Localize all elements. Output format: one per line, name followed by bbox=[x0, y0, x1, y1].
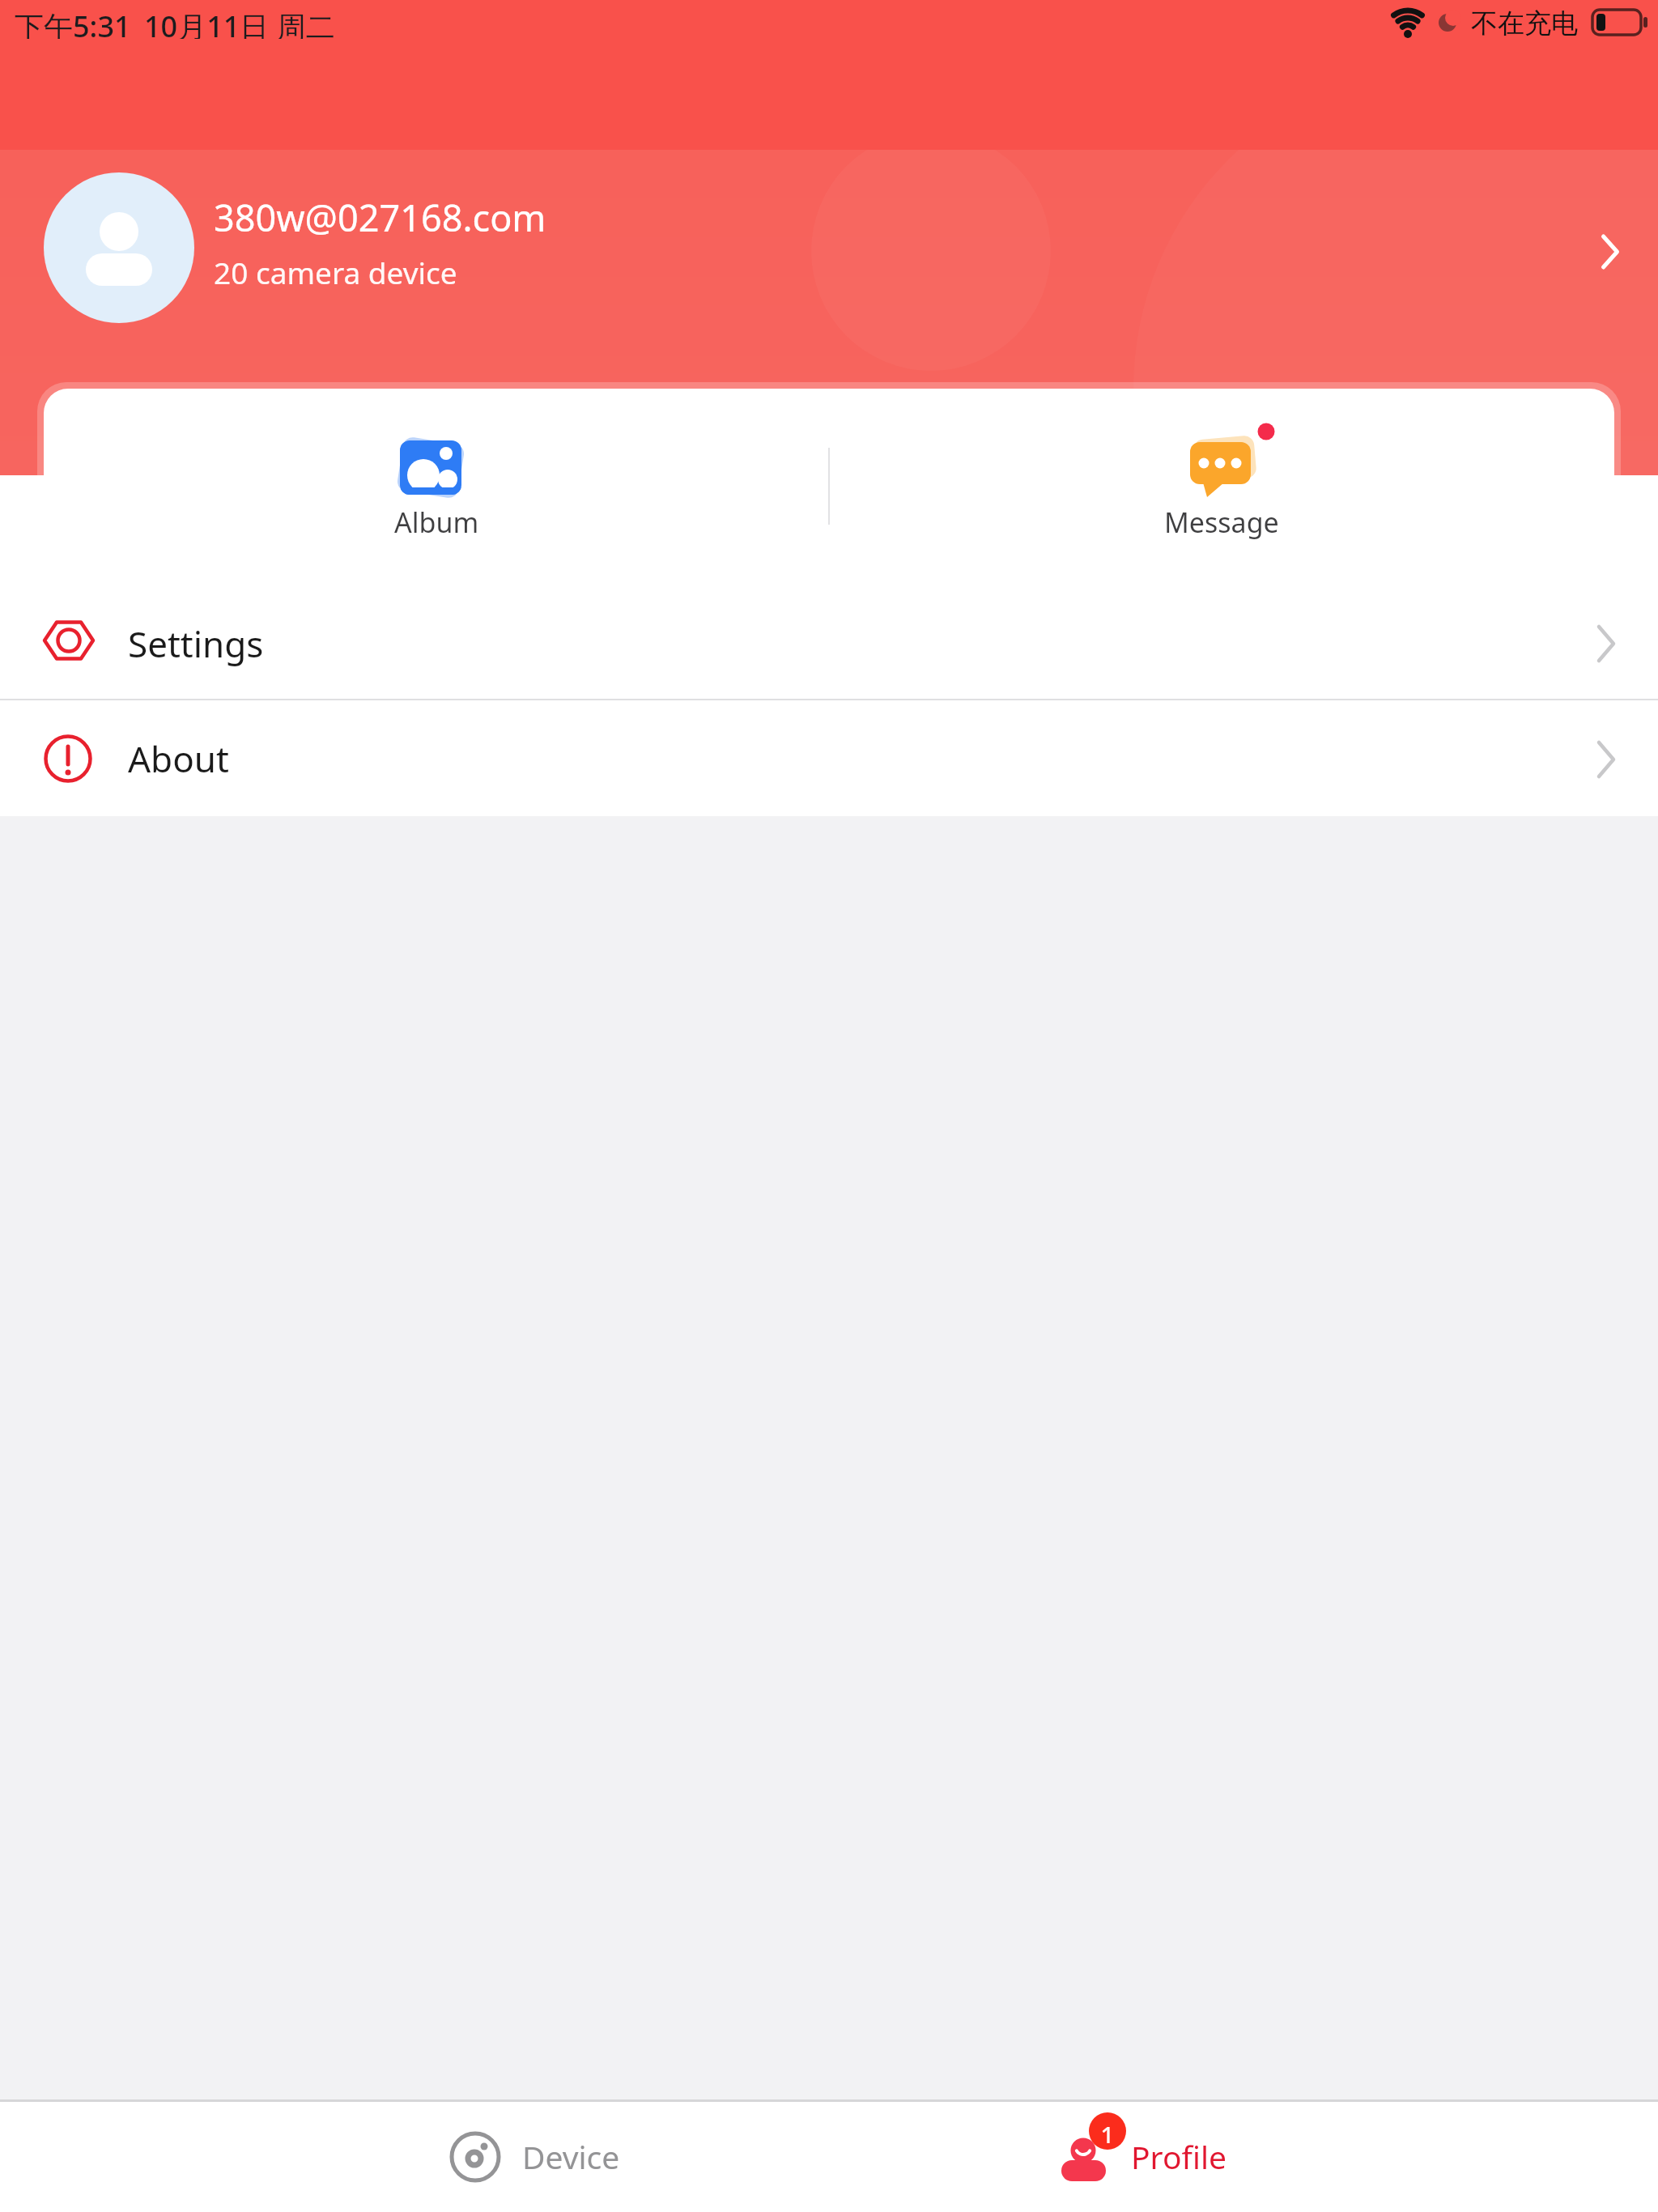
staticText: 下午5:31 bbox=[15, 6, 131, 39]
button[interactable]: Album bbox=[44, 389, 829, 561]
staticText: About bbox=[128, 734, 229, 783]
staticText: Settings bbox=[128, 619, 264, 668]
button[interactable]: About bbox=[0, 700, 1658, 816]
staticText: Album bbox=[394, 504, 479, 541]
staticText: 1 bbox=[1100, 2119, 1116, 2143]
staticText: Profile bbox=[1131, 2135, 1227, 2178]
button[interactable]: 380w@027168.com bbox=[0, 156, 1658, 339]
button[interactable]: Device bbox=[414, 2101, 738, 2212]
button[interactable]: Message bbox=[829, 389, 1614, 561]
staticText: 20 camera device bbox=[214, 252, 457, 287]
staticText: Message bbox=[1164, 504, 1279, 541]
staticText: Device bbox=[522, 2135, 620, 2178]
staticText: 380w@027168.com bbox=[214, 193, 546, 238]
button[interactable]: 1 bbox=[1039, 2101, 1363, 2212]
staticText: 10月11日 周二 bbox=[144, 6, 335, 39]
button[interactable]: Settings bbox=[0, 567, 1658, 700]
staticText: 不在充电 bbox=[1471, 6, 1578, 39]
